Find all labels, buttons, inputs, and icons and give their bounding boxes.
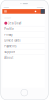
button[interactable]: Privacy (2, 32, 45, 37)
staticText: Privacy (4, 33, 12, 36)
button[interactable]: Profile (2, 26, 45, 32)
staticText: Profile (4, 27, 14, 31)
button[interactable]: Profile (0, 0, 4, 5)
button[interactable]: About (2, 55, 45, 60)
staticText: Support (4, 50, 15, 54)
staticText: About (4, 56, 13, 59)
staticText: Linked cards (4, 39, 20, 42)
staticText: Payments (4, 44, 16, 48)
staticText: Jess Lloyd (9, 21, 22, 25)
button[interactable]: Payments (2, 43, 45, 49)
button[interactable]: Support (2, 49, 45, 55)
button[interactable]: Search (0, 0, 5, 5)
button[interactable]: Linked cards (2, 38, 45, 43)
button[interactable]: Menu (0, 0, 6, 5)
button[interactable]: Jess Lloyd (2, 20, 45, 26)
